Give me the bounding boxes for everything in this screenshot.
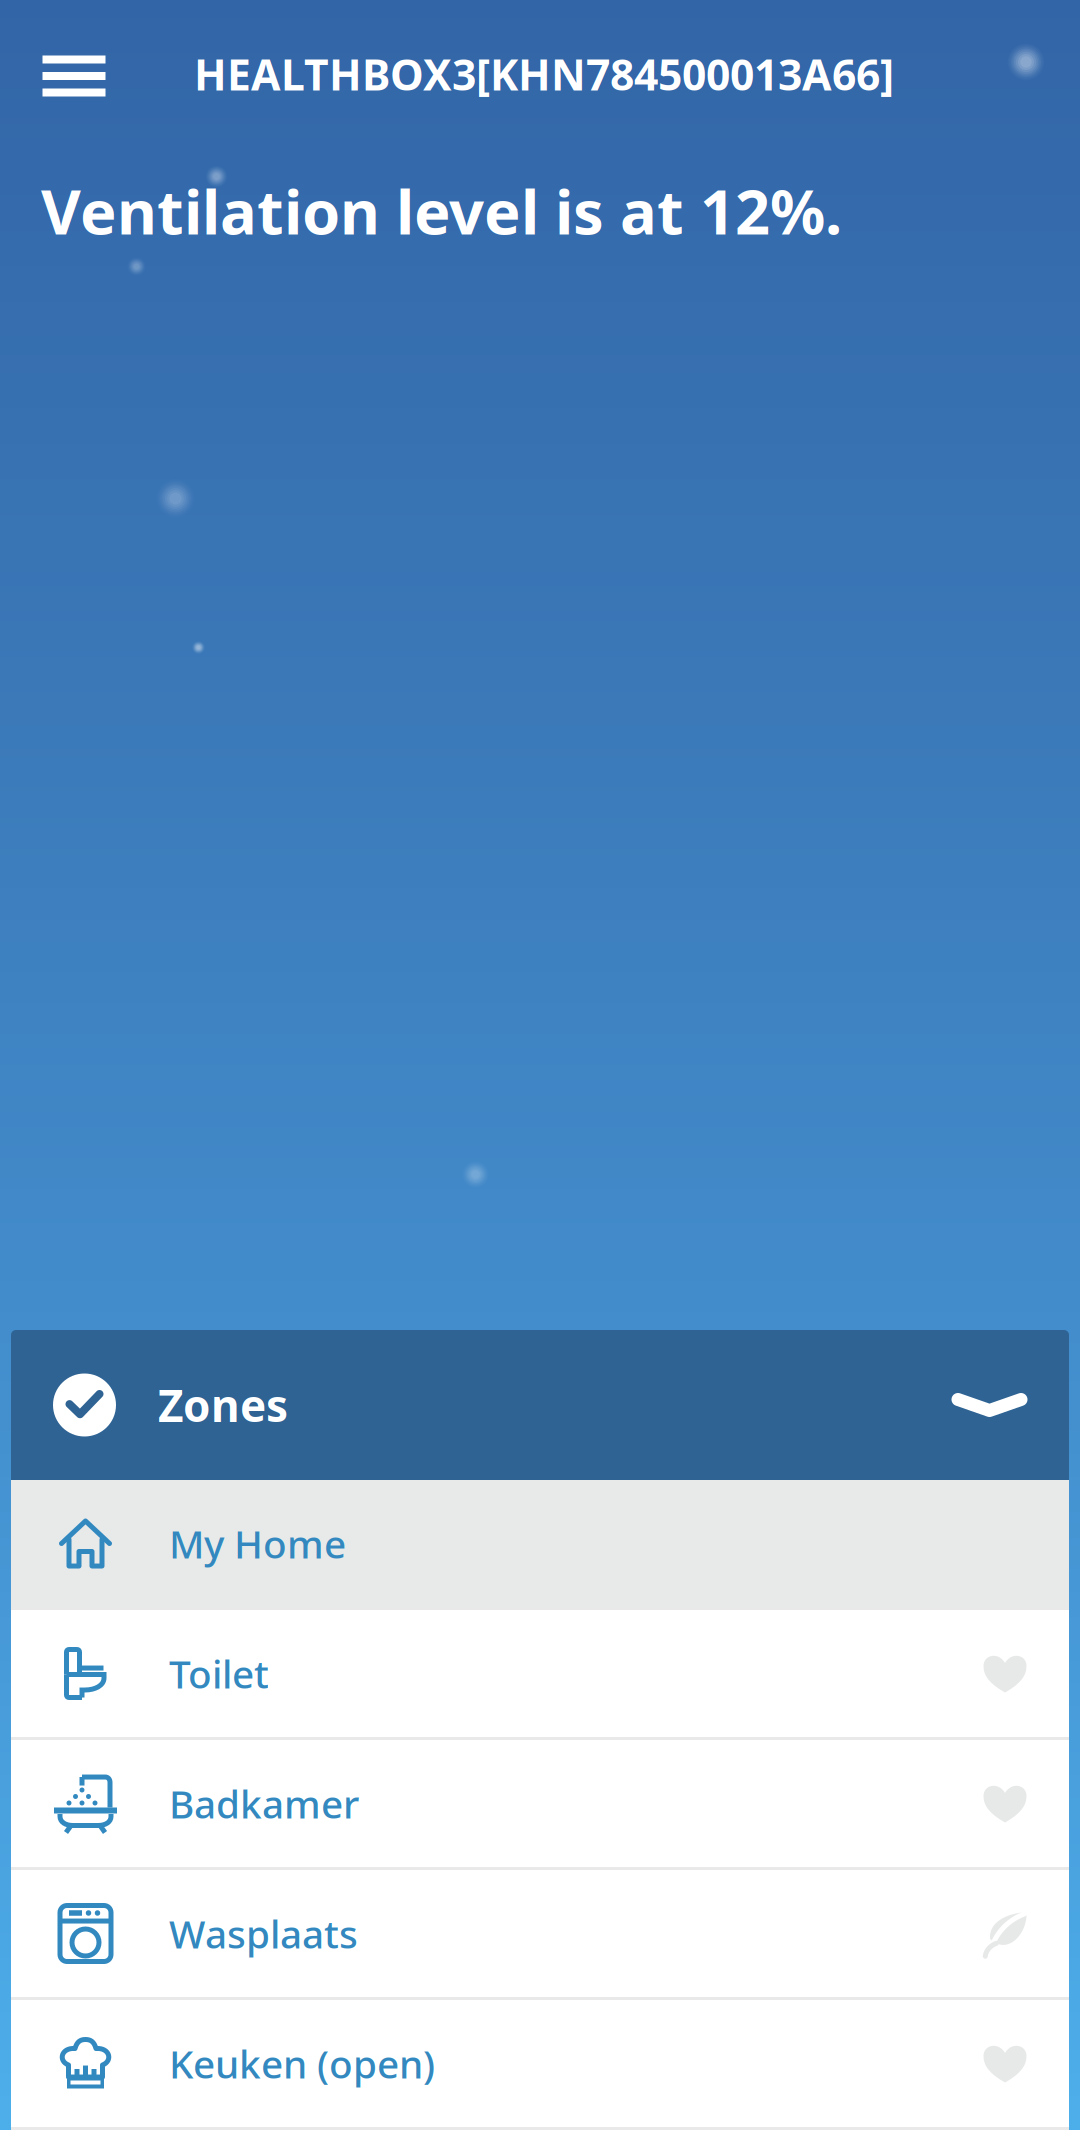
staticText: Toilet	[169, 1648, 269, 1699]
button[interactable]: My Home	[11, 1480, 1069, 1607]
button[interactable]: Zones	[11, 1330, 1069, 1480]
staticText: Wasplaats	[169, 1908, 358, 1959]
button[interactable]: Toilet	[11, 1610, 1069, 1737]
staticText: Ventilation level is at 12%.	[41, 170, 842, 251]
staticText: HEALTHBOX3[KHN784500013A66]	[194, 46, 894, 102]
staticText: My Home	[169, 1518, 346, 1569]
staticText: Zones	[158, 1376, 288, 1434]
button[interactable]: Menu	[0, 22, 148, 126]
button[interactable]: Keuken (open)	[11, 2000, 1069, 2127]
staticText: Badkamer	[169, 1778, 359, 1829]
staticText: Keuken (open)	[169, 2038, 435, 2089]
button[interactable]: Badkamer	[11, 1740, 1069, 1867]
button[interactable]: Wasplaats	[11, 1870, 1069, 1997]
